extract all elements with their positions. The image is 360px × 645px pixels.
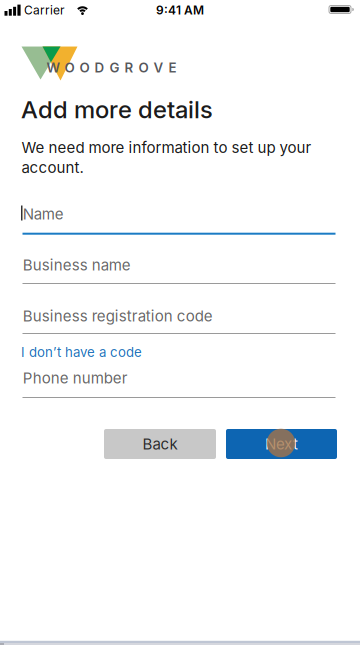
staticText: Business registration code xyxy=(23,307,213,325)
staticText: 9:41 AM xyxy=(156,3,204,17)
button[interactable]: Back xyxy=(104,429,216,459)
staticText: Carrier xyxy=(24,3,65,17)
staticText: I don’t have a code xyxy=(21,344,142,360)
staticText: We need more information to set up your xyxy=(21,138,311,157)
staticText: Business name xyxy=(23,256,131,274)
staticText: Back xyxy=(142,435,177,453)
staticText: WOODGROVE xyxy=(46,60,176,76)
staticText: Add more details xyxy=(21,95,213,124)
button[interactable]: Next xyxy=(226,429,337,459)
button[interactable]: Business registration code xyxy=(22,307,336,334)
staticText: account. xyxy=(21,158,83,176)
button[interactable]: Phone number xyxy=(22,369,336,397)
staticText: Name xyxy=(23,205,64,223)
button[interactable]: Name xyxy=(22,204,336,234)
button[interactable]: I don’t have a code xyxy=(21,344,142,360)
staticText: Next xyxy=(265,435,298,453)
button[interactable]: Business name xyxy=(22,256,336,284)
staticText: Phone number xyxy=(23,369,128,387)
